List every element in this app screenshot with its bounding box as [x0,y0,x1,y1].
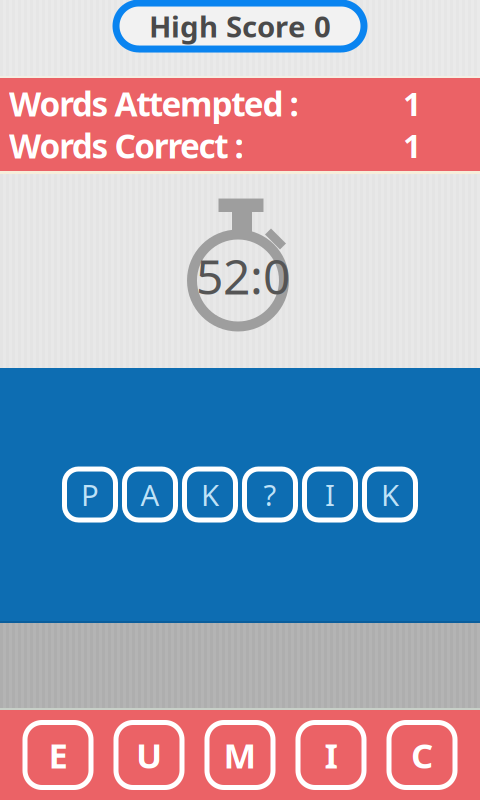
staticText: C [411,732,433,778]
staticText: K [381,475,399,514]
staticText: P [81,475,99,514]
button[interactable]: E [22,719,94,790]
staticText: K [201,475,219,514]
staticText: I [325,475,335,514]
staticText: E [48,732,67,778]
button[interactable]: I [300,465,359,524]
staticText: I [324,732,337,778]
staticText: U [136,732,162,778]
button[interactable]: A [120,465,179,524]
staticText: 1 [403,124,421,167]
button[interactable]: I [295,719,367,790]
staticText: Words Attempted : [9,81,299,126]
button[interactable]: P [60,465,119,524]
staticText: A [140,475,159,514]
staticText: 52:0 [196,244,290,308]
button[interactable]: ? [240,465,299,524]
button[interactable]: High Score 0 [113,0,367,52]
button[interactable]: M [204,719,276,790]
staticText: 1 [403,82,421,125]
button[interactable]: C [386,719,458,790]
staticText: High Score 0 [149,6,331,45]
button[interactable]: U [113,719,185,790]
button[interactable]: K [360,465,419,524]
button[interactable]: K [180,465,239,524]
staticText: ? [263,475,276,514]
staticText: M [223,732,256,778]
staticText: Words Correct : [9,123,243,168]
